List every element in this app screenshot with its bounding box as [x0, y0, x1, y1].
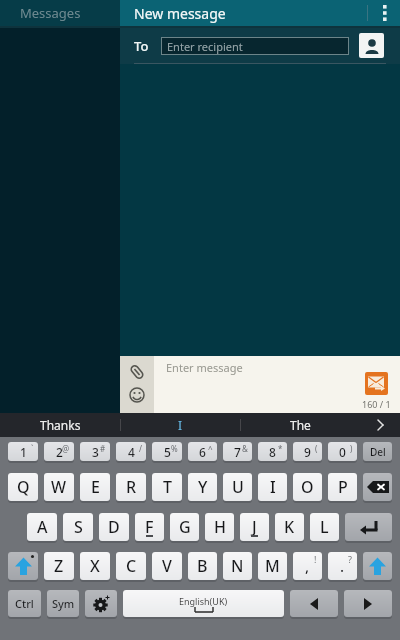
- staticText: Enter recipient: [167, 39, 243, 54]
- button[interactable]: L: [310, 513, 339, 541]
- button[interactable]: J: [240, 513, 269, 541]
- staticText: (: [315, 443, 318, 454]
- button[interactable]: A: [27, 513, 57, 541]
- button[interactable]: English(UK): [123, 590, 284, 617]
- button[interactable]: [359, 33, 384, 58]
- button[interactable]: D: [99, 513, 129, 541]
- button[interactable]: 6: [188, 442, 217, 461]
- button[interactable]: Thanks: [0, 413, 120, 437]
- button[interactable]: P: [328, 473, 357, 501]
- staticText: Ctrl: [15, 596, 34, 611]
- button[interactable]: [360, 413, 400, 437]
- button[interactable]: Ctrl: [8, 590, 41, 617]
- button[interactable]: 9: [293, 442, 322, 461]
- staticText: D: [108, 516, 120, 538]
- button[interactable]: N: [223, 552, 252, 580]
- button[interactable]: 3: [80, 442, 110, 461]
- button[interactable]: The: [241, 413, 360, 437]
- button[interactable]: C: [116, 552, 146, 580]
- button[interactable]: S: [63, 513, 93, 541]
- button[interactable]: Z: [44, 552, 74, 580]
- button[interactable]: I: [258, 473, 287, 501]
- button[interactable]: [290, 590, 338, 617]
- button[interactable]: 4: [116, 442, 146, 461]
- staticText: ): [350, 443, 353, 454]
- button[interactable]: Del: [363, 442, 392, 461]
- staticText: R: [126, 476, 137, 498]
- staticText: 3: [92, 444, 99, 460]
- button[interactable]: [370, 0, 400, 26]
- staticText: N: [231, 555, 244, 577]
- staticText: /: [139, 443, 142, 454]
- staticText: P: [338, 476, 348, 498]
- staticText: W: [51, 476, 67, 498]
- staticText: 8: [269, 444, 276, 460]
- button[interactable]: Enter recipient: [161, 37, 349, 55]
- staticText: T: [163, 476, 172, 498]
- button[interactable]: Messages: [0, 0, 120, 26]
- staticText: V: [162, 555, 172, 577]
- button[interactable]: K: [275, 513, 304, 541]
- staticText: 160 / 1: [362, 398, 391, 410]
- button[interactable]: G: [170, 513, 199, 541]
- staticText: I: [178, 417, 183, 433]
- button[interactable]: W: [44, 473, 74, 501]
- button[interactable]: H: [205, 513, 234, 541]
- staticText: 0: [339, 444, 346, 460]
- button[interactable]: T: [152, 473, 182, 501]
- button[interactable]: ,: [293, 552, 322, 580]
- button[interactable]: 7: [223, 442, 252, 461]
- button[interactable]: M: [258, 552, 287, 580]
- staticText: ?: [348, 553, 352, 565]
- staticText: J: [252, 516, 257, 538]
- staticText: G: [179, 516, 191, 538]
- staticText: ^: [208, 443, 213, 454]
- staticText: %: [171, 443, 178, 454]
- button[interactable]: 2: [44, 442, 74, 461]
- button[interactable]: [127, 385, 147, 405]
- button[interactable]: Q: [8, 473, 38, 501]
- staticText: To: [134, 37, 149, 55]
- staticText: S: [74, 516, 83, 538]
- staticText: *: [278, 443, 283, 454]
- button[interactable]: V: [152, 552, 182, 580]
- button[interactable]: 1: [8, 442, 38, 461]
- staticText: New message: [134, 4, 226, 23]
- button[interactable]: [363, 552, 392, 580]
- button[interactable]: 8: [258, 442, 287, 461]
- staticText: #: [100, 443, 106, 454]
- staticText: .: [340, 556, 345, 576]
- button[interactable]: [345, 513, 392, 541]
- button[interactable]: R: [116, 473, 146, 501]
- staticText: Thanks: [40, 417, 81, 433]
- button[interactable]: Sym: [47, 590, 79, 617]
- staticText: I: [270, 476, 276, 498]
- staticText: English(UK): [179, 595, 228, 607]
- button[interactable]: U: [223, 473, 252, 501]
- button[interactable]: [365, 372, 388, 395]
- button[interactable]: .: [328, 552, 357, 580]
- button[interactable]: B: [188, 552, 217, 580]
- button[interactable]: 0: [328, 442, 357, 461]
- staticText: 5: [164, 444, 171, 460]
- staticText: Messages: [20, 4, 81, 22]
- button[interactable]: [85, 590, 117, 617]
- staticText: M: [265, 555, 280, 577]
- button[interactable]: O: [293, 473, 322, 501]
- staticText: &: [242, 443, 248, 454]
- button[interactable]: 5: [152, 442, 182, 461]
- button[interactable]: [127, 362, 147, 382]
- button[interactable]: X: [80, 552, 110, 580]
- staticText: Q: [17, 476, 30, 498]
- button[interactable]: I: [121, 413, 240, 437]
- button[interactable]: [363, 473, 392, 501]
- button[interactable]: Y: [188, 473, 217, 501]
- staticText: O: [301, 476, 314, 498]
- staticText: 6: [199, 444, 206, 460]
- button[interactable]: [344, 590, 392, 617]
- staticText: B: [197, 555, 208, 577]
- button[interactable]: F: [135, 513, 164, 541]
- staticText: 2: [56, 444, 63, 460]
- button[interactable]: E: [80, 473, 110, 501]
- button[interactable]: [8, 552, 38, 580]
